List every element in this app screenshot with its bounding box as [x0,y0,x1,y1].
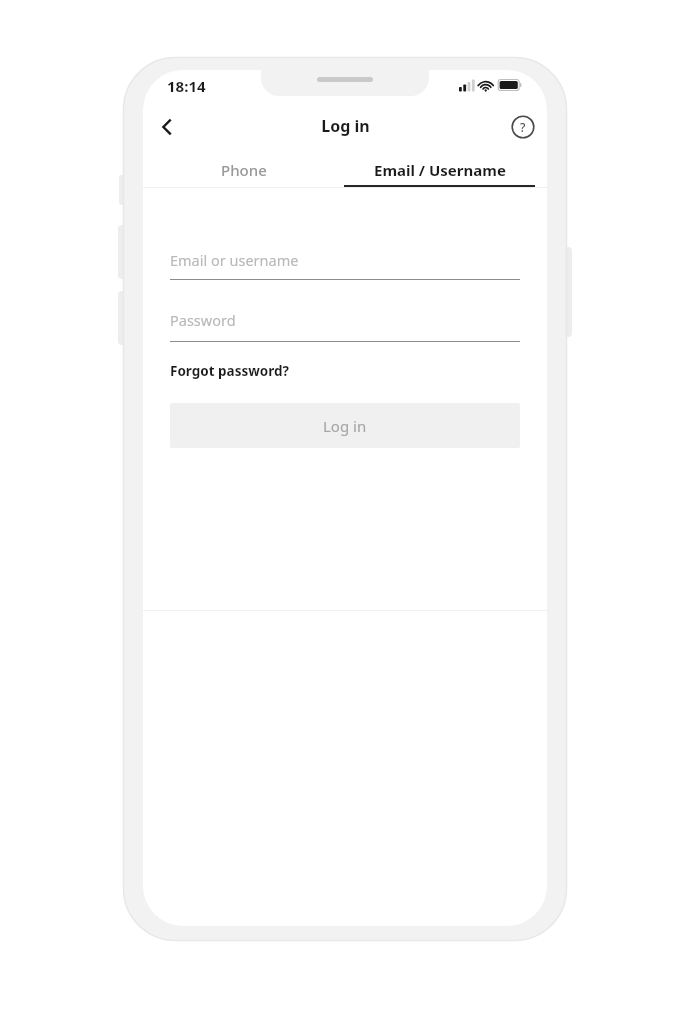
button[interactable]: Email / Username [344,152,547,188]
button[interactable]: Help [504,108,542,146]
button[interactable]: Back [148,108,186,146]
staticText: Log in [321,115,370,137]
staticText: Phone [221,160,267,180]
staticText: Log in [323,416,367,436]
button[interactable]: Phone [143,152,344,188]
staticText: ? [520,119,526,135]
button[interactable]: Log in [170,403,520,448]
staticText: Forgot password? [170,362,289,380]
staticText: Email / Username [374,160,506,180]
staticText: Email or username [170,250,299,270]
button[interactable]: Forgot password? [170,362,289,380]
staticText: 18:14 [167,76,206,96]
staticText: Password [170,310,236,330]
